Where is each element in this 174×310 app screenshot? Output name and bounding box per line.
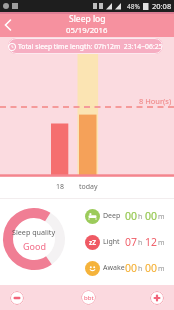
- staticText: 00: [125, 261, 138, 275]
- staticText: Total sleep time length: 07h12m 23:14~06…: [18, 42, 163, 51]
- staticText: 05/19/2016: [66, 25, 108, 36]
- staticText: 00: [125, 209, 138, 223]
- staticText: bbt: [84, 294, 94, 302]
- button[interactable]: Deep: [85, 206, 165, 226]
- button[interactable]: zZ: [85, 232, 165, 252]
- staticText: today: [79, 182, 98, 192]
- staticText: Good: [23, 240, 46, 252]
- staticText: 07: [125, 235, 138, 249]
- staticText: 20:08: [152, 1, 172, 11]
- staticText: Deep: [103, 211, 121, 221]
- button[interactable]: Awake: [85, 258, 165, 278]
- button[interactable]: [0, 15, 20, 35]
- staticText: m: [158, 264, 165, 274]
- staticText: m: [158, 238, 165, 248]
- staticText: 18: [56, 182, 65, 192]
- staticText: h: [138, 238, 143, 248]
- staticText: 12: [145, 235, 158, 249]
- staticText: Awake: [103, 263, 125, 273]
- staticText: Sleep quality: [12, 227, 56, 237]
- button[interactable]: bbt: [81, 290, 96, 305]
- staticText: Light: [103, 237, 120, 247]
- button[interactable]: [150, 291, 164, 305]
- staticText: h: [138, 212, 143, 222]
- staticText: zZ: [89, 238, 96, 247]
- staticText: 48%: [127, 2, 140, 11]
- staticText: h: [138, 264, 143, 274]
- staticText: Sleep log: [69, 13, 106, 25]
- button[interactable]: Sleep quality: [3, 208, 65, 270]
- button[interactable]: Total sleep time length: 07h12m 23:14~06…: [8, 38, 163, 54]
- staticText: 00: [145, 209, 158, 223]
- button[interactable]: [10, 291, 24, 305]
- staticText: 00: [145, 261, 158, 275]
- staticText: 8 Hour(s): [139, 96, 172, 106]
- staticText: m: [158, 212, 165, 222]
